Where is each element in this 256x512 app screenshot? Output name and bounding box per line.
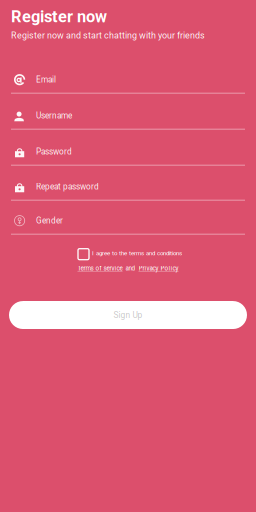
button[interactable]: I agree to the terms and conditions	[74, 247, 182, 260]
button[interactable]: Gender	[0, 201, 256, 235]
staticText: Register now	[11, 7, 107, 26]
button[interactable]: Sign Up	[0, 301, 256, 329]
staticText: Email	[36, 75, 56, 84]
staticText: Register now and start chatting with you…	[11, 30, 205, 41]
staticText: Terms of service	[77, 265, 122, 272]
staticText: I agree to the terms and conditions	[92, 250, 182, 257]
staticText: Repeat password	[36, 182, 99, 191]
staticText: Sign Up	[113, 310, 142, 320]
button[interactable]: Username	[0, 94, 256, 130]
staticText: Privacy Policy	[138, 265, 178, 272]
button[interactable]: Repeat password	[0, 166, 256, 201]
button[interactable]: Password	[0, 130, 256, 166]
staticText: Gender	[36, 216, 63, 225]
staticText: and	[125, 265, 135, 272]
button[interactable]: Terms of service	[77, 265, 122, 272]
button[interactable]: Privacy Policy	[138, 265, 178, 272]
staticText: Username	[36, 111, 72, 120]
button[interactable]: Email	[0, 58, 256, 94]
staticText: Password	[36, 147, 72, 156]
